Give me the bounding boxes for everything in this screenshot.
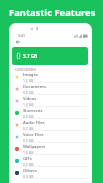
staticText: 0.9 GB bbox=[23, 174, 34, 179]
staticText: 1.3 GB bbox=[23, 102, 34, 107]
staticText: Videos bbox=[23, 96, 37, 102]
button[interactable]: Shortcuts bbox=[9, 107, 92, 119]
staticText: 0.3 GB bbox=[23, 138, 34, 143]
button[interactable]: Wallpapers bbox=[9, 143, 92, 155]
staticText: Voice Files bbox=[23, 132, 44, 138]
button[interactable]: Voice Files bbox=[9, 131, 92, 143]
staticText: 0.4 GB bbox=[23, 114, 34, 119]
button[interactable]: GIFs bbox=[9, 155, 92, 167]
staticText: Fantastic Features bbox=[9, 6, 96, 19]
button[interactable]: Others bbox=[9, 167, 92, 179]
staticText: Audio Files bbox=[23, 120, 45, 126]
staticText: Images bbox=[23, 72, 38, 78]
button[interactable]: Videos bbox=[9, 95, 92, 107]
staticText: Wallpapers bbox=[23, 144, 46, 150]
staticText: Shortcuts bbox=[23, 108, 43, 114]
staticText: Others bbox=[23, 168, 37, 174]
staticText: 1.2 GB bbox=[23, 78, 34, 83]
button[interactable]: Documents bbox=[9, 83, 92, 95]
button[interactable]: 3.7 GB bbox=[12, 47, 88, 65]
staticText: CATEGORIES bbox=[15, 67, 37, 71]
staticText: 0.7 GB bbox=[23, 126, 34, 131]
staticText: 0.2 GB bbox=[23, 162, 34, 167]
staticText: 1.0 GB bbox=[23, 150, 34, 155]
button[interactable]: Back bbox=[14, 38, 21, 45]
staticText: GIFs bbox=[23, 156, 32, 162]
button[interactable]: Images bbox=[9, 71, 92, 83]
button[interactable]: Audio Files bbox=[9, 119, 92, 131]
staticText: 9:41 bbox=[18, 33, 26, 38]
staticText: 0.8 GB bbox=[23, 90, 34, 95]
staticText: 3.7 GB bbox=[23, 53, 38, 59]
staticText: Documents bbox=[23, 84, 46, 90]
